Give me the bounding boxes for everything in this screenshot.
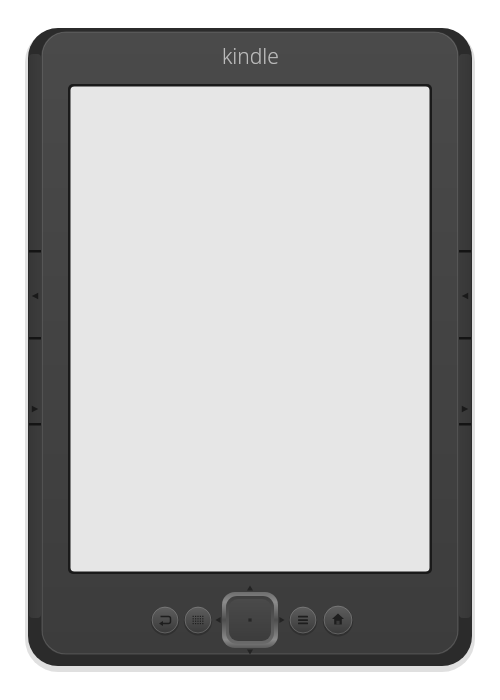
button[interactable]: Previous page left	[26, 255, 38, 335]
staticText: kindle	[222, 42, 279, 71]
button[interactable]: Navigation pad	[222, 592, 278, 648]
button[interactable]: Next page left	[26, 340, 38, 422]
button[interactable]: Back	[152, 607, 178, 633]
button[interactable]: Keyboard	[185, 607, 211, 633]
button[interactable]: Menu	[290, 607, 316, 633]
button[interactable]: Previous page right	[462, 255, 474, 335]
button[interactable]: E-ink display	[70, 86, 430, 572]
button[interactable]: Next page right	[462, 340, 474, 422]
button[interactable]: Home	[324, 606, 352, 634]
